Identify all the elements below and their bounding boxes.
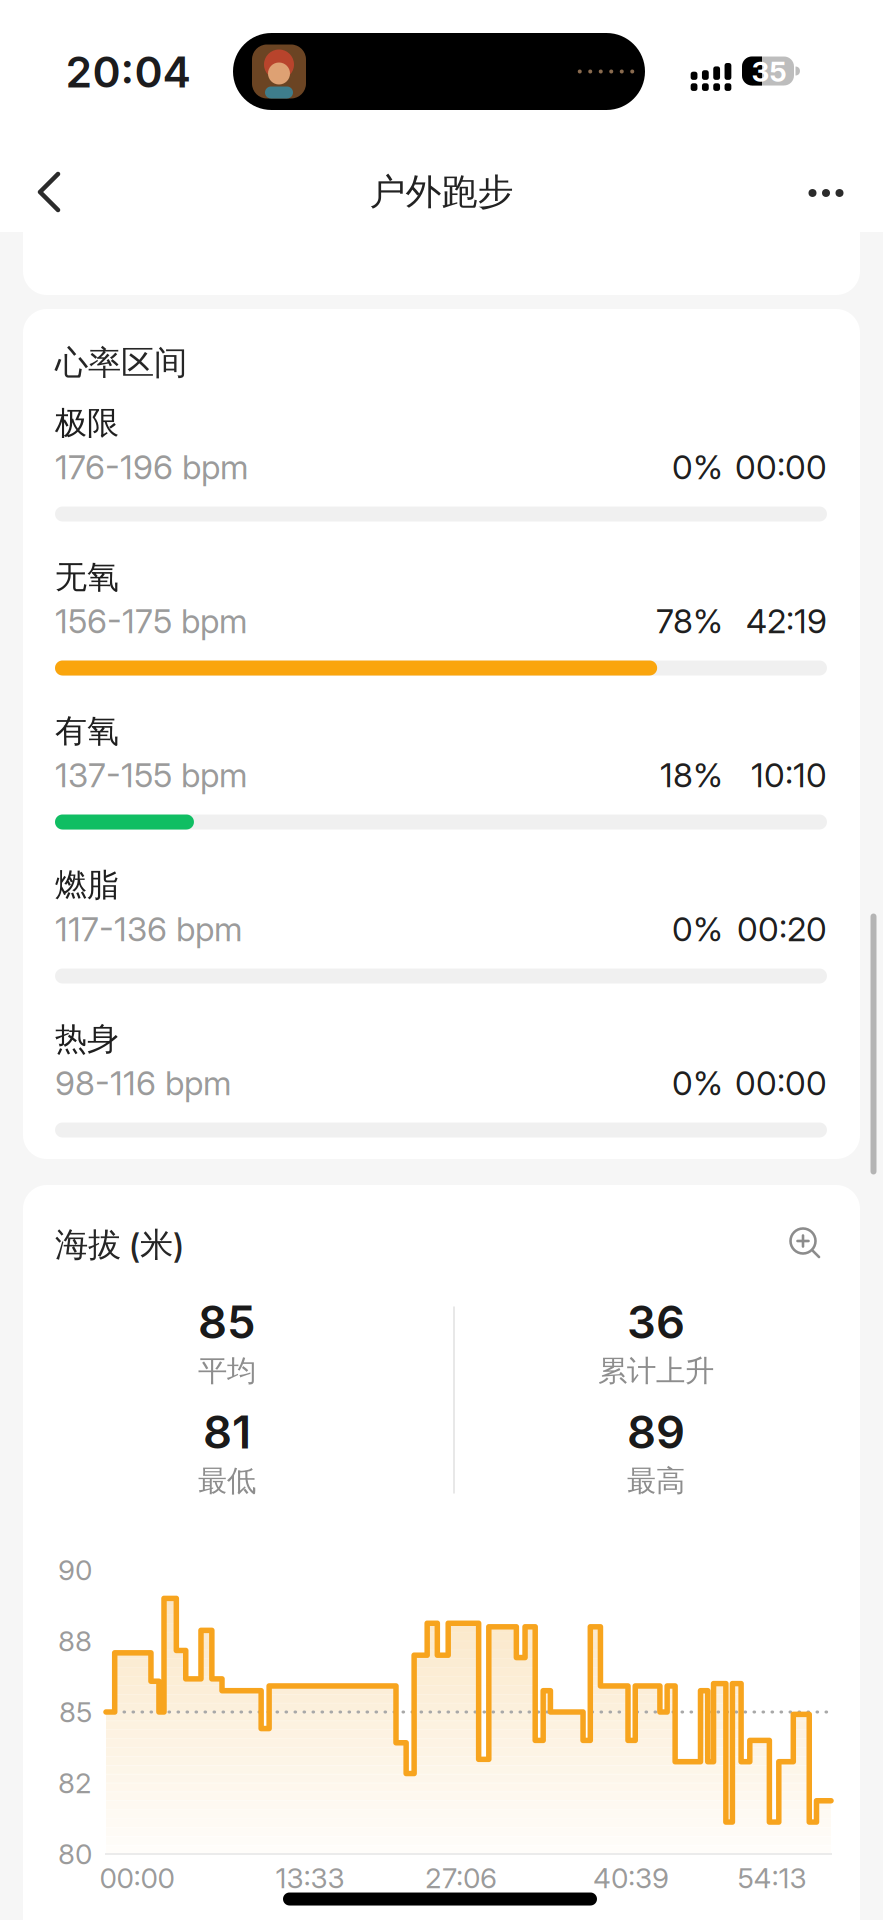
button[interactable]: Zoom chart bbox=[781, 1219, 831, 1269]
staticText: 户外跑步 bbox=[369, 170, 513, 214]
staticText: 燃脂 bbox=[55, 865, 119, 905]
staticText: 80 bbox=[58, 1837, 92, 1870]
staticText: 0% bbox=[672, 1063, 723, 1103]
staticText: 13:33 bbox=[275, 1861, 344, 1894]
staticText: 00:00 bbox=[99, 1861, 174, 1894]
staticText: 176-196 bpm bbox=[55, 447, 248, 487]
staticText: 18% bbox=[660, 755, 723, 795]
staticText: 0% bbox=[672, 909, 723, 949]
staticText: 20:04 bbox=[65, 47, 190, 97]
staticText: 00:20 bbox=[737, 909, 827, 949]
staticText: 90 bbox=[58, 1553, 92, 1586]
staticText: 0% bbox=[672, 447, 723, 487]
staticText: 最低 bbox=[198, 1463, 256, 1499]
staticText: 27:06 bbox=[425, 1861, 497, 1894]
staticText: 36 bbox=[627, 1295, 685, 1349]
staticText: 117-136 bpm bbox=[55, 909, 242, 949]
staticText: 累计上升 bbox=[598, 1353, 714, 1389]
staticText: 85 bbox=[198, 1295, 256, 1349]
staticText: 极限 bbox=[55, 403, 119, 443]
staticText: 平均 bbox=[198, 1353, 256, 1389]
staticText: 00:00 bbox=[735, 1063, 827, 1103]
staticText: 最高 bbox=[627, 1463, 685, 1499]
staticText: 无氧 bbox=[55, 557, 119, 597]
staticText: 88 bbox=[58, 1624, 92, 1657]
staticText: 137-155 bpm bbox=[55, 755, 247, 795]
staticText: 82 bbox=[58, 1766, 92, 1799]
staticText: 40:39 bbox=[593, 1861, 669, 1894]
button[interactable]: More bbox=[791, 166, 861, 220]
staticText: 81 bbox=[203, 1405, 251, 1459]
staticText: 00:00 bbox=[735, 447, 827, 487]
staticText: 89 bbox=[627, 1405, 685, 1459]
button[interactable]: Back bbox=[28, 165, 82, 219]
staticText: 心率区间 bbox=[55, 342, 187, 383]
staticText: 海拔 (米) bbox=[55, 1224, 184, 1265]
staticText: 85 bbox=[59, 1695, 92, 1728]
staticText: 156-175 bpm bbox=[55, 601, 247, 641]
staticText: 有氧 bbox=[55, 711, 119, 751]
staticText: 35 bbox=[751, 55, 786, 88]
staticText: 54:13 bbox=[737, 1861, 806, 1894]
staticText: 98-116 bpm bbox=[55, 1063, 231, 1103]
staticText: 10:10 bbox=[751, 755, 827, 795]
staticText: 42:19 bbox=[746, 601, 827, 641]
staticText: 78% bbox=[656, 601, 723, 641]
staticText: 热身 bbox=[55, 1019, 119, 1059]
